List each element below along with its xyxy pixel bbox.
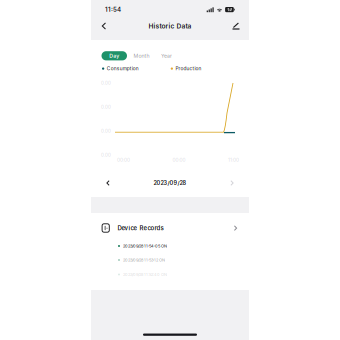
staticText: 0.00 (101, 104, 111, 110)
staticText: 2023/09/28 11:54:05 ON (123, 244, 167, 248)
button[interactable]: Day (101, 51, 127, 60)
staticText: Consumption (107, 66, 139, 71)
staticText: 0.00 (101, 152, 111, 158)
staticText: 2023/09/28 11:53:12 ON (123, 258, 165, 262)
staticText: Year (161, 53, 172, 59)
staticText: 11:00 (228, 157, 239, 163)
staticText: 0.00 (101, 128, 111, 134)
staticText: Device Records (117, 224, 163, 232)
staticText: 00:00 (172, 157, 185, 163)
button[interactable]: Previous day (99, 175, 117, 191)
button[interactable]: Year (161, 51, 172, 60)
staticText: 11:54 (105, 6, 121, 13)
staticText: 2023/09/28 (153, 180, 186, 186)
button[interactable]: Edit (227, 19, 245, 33)
button[interactable]: Back (95, 19, 113, 33)
button[interactable]: Next day (223, 175, 241, 191)
button[interactable]: Month (133, 51, 149, 60)
staticText: 2023/09/28 11:52:40 ON (123, 272, 167, 277)
staticText: Historic Data (148, 22, 191, 30)
button[interactable]: Device Records (91, 218, 249, 238)
staticText: 00:00 (117, 157, 130, 163)
staticText: 0.00 (101, 80, 111, 86)
staticText: Day (109, 53, 119, 59)
staticText: Month (133, 53, 149, 59)
staticText: Production (175, 66, 201, 71)
